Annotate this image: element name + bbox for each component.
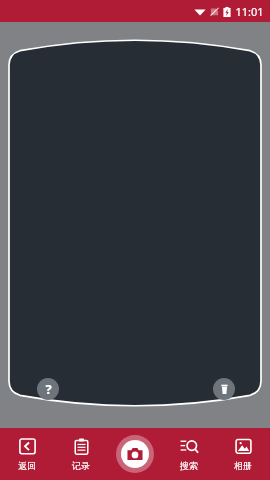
button[interactable]: Help xyxy=(37,378,59,400)
button[interactable]: 相册 xyxy=(216,428,270,480)
staticText: 记录 xyxy=(72,460,90,471)
staticText: ? xyxy=(45,380,52,398)
button[interactable]: 返回 xyxy=(0,428,54,480)
staticText: 相册 xyxy=(234,460,252,471)
staticText: 搜索 xyxy=(180,460,198,471)
button[interactable]: 搜索 xyxy=(162,428,216,480)
button[interactable]: Flashlight xyxy=(213,378,235,400)
button[interactable]: 记录 xyxy=(54,428,108,480)
staticText: 返回 xyxy=(18,460,36,471)
button[interactable]: Camera shutter xyxy=(116,435,154,473)
staticText: 11:01 xyxy=(235,4,264,19)
